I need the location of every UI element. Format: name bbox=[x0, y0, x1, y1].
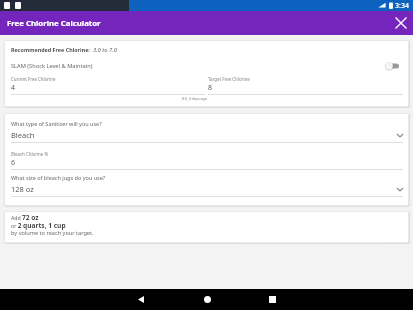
staticText: Recommended Free Chlorine: 3.0 to 7.0 bbox=[11, 46, 117, 54]
button[interactable]: Current Free Chlorine bbox=[11, 76, 205, 95]
staticText: Free Chlorine Calculator bbox=[7, 18, 101, 29]
staticText: 4 bbox=[11, 83, 16, 93]
staticText: 3:34 bbox=[395, 1, 409, 11]
button[interactable]: Recent apps bbox=[239, 289, 305, 310]
staticText: Bleach Chlorine % bbox=[11, 151, 49, 157]
button[interactable]: What size of bleach jugs do you use? bbox=[11, 174, 403, 197]
staticText: SLAM (Shock Level & Maintain) bbox=[11, 62, 93, 70]
staticText: Target Free Chlorine bbox=[208, 76, 250, 82]
button[interactable]: Home bbox=[174, 289, 240, 310]
button[interactable]: Back bbox=[108, 289, 174, 310]
staticText: Add 72 oz or 2 quarts, 1 cup by volume t… bbox=[11, 213, 94, 236]
staticText: 6 bbox=[11, 158, 16, 168]
button[interactable]: Bleach Chlorine % bbox=[11, 151, 403, 170]
staticText: What type of Sanitizer will you use? bbox=[11, 120, 102, 127]
staticText: 8.0, 4 days ago bbox=[11, 96, 207, 101]
button[interactable]: What type of Sanitizer will you use? bbox=[11, 120, 403, 143]
staticText: 128 oz bbox=[11, 184, 34, 194]
staticText: What size of bleach jugs do you use? bbox=[11, 174, 106, 181]
staticText: Current Free Chlorine bbox=[11, 76, 56, 82]
staticText: 8 bbox=[208, 83, 213, 93]
button[interactable]: Close bbox=[389, 11, 413, 35]
button[interactable]: SLAM toggle bbox=[385, 61, 399, 71]
staticText: Bleach bbox=[11, 130, 35, 140]
button[interactable]: Target Free Chlorine bbox=[208, 76, 403, 95]
